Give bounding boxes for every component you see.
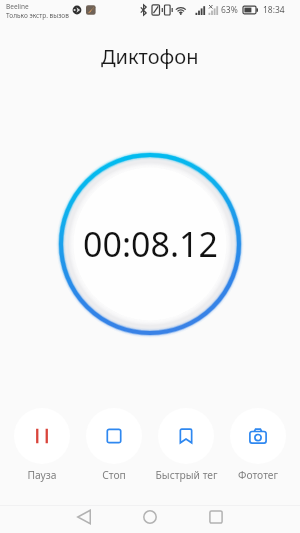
button[interactable]: Фототег <box>222 402 294 482</box>
button[interactable]: Home <box>117 501 183 533</box>
staticText: Фототег <box>238 468 278 482</box>
staticText: Быстрый тег <box>155 468 218 482</box>
staticText: Пауза <box>27 468 57 482</box>
button[interactable]: Пауза <box>6 402 78 482</box>
staticText: Beeline <box>6 2 29 11</box>
staticText: Диктофон <box>101 43 199 70</box>
staticText: 63% <box>221 4 238 16</box>
button[interactable]: Быстрый тег <box>150 402 222 482</box>
button[interactable]: Стоп <box>78 402 150 482</box>
staticText: Стоп <box>102 468 126 482</box>
button[interactable]: Запись 00:08.12 <box>50 144 250 344</box>
button[interactable]: Recents <box>183 501 249 533</box>
staticText: Только экстр. вызов <box>6 11 69 20</box>
button[interactable]: Back <box>51 501 117 533</box>
staticText: 00:08.12 <box>83 221 218 267</box>
staticText: 18:34 <box>263 4 285 16</box>
